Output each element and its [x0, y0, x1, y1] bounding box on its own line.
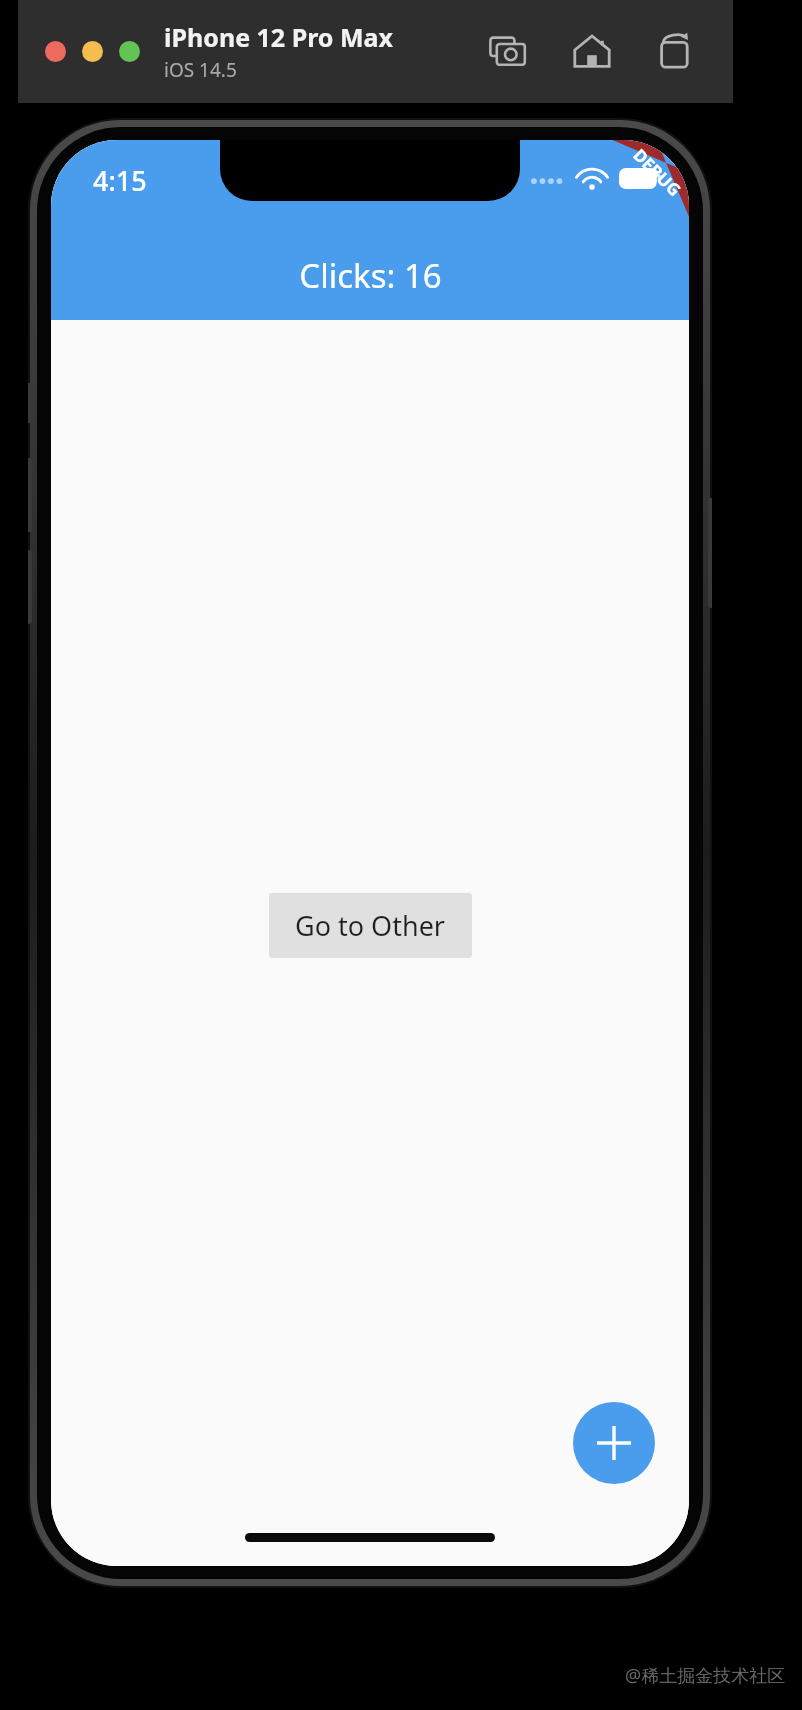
- button[interactable]: Rotate: [649, 25, 703, 79]
- staticText: Go to Other: [295, 907, 446, 944]
- button[interactable]: Home: [565, 25, 619, 79]
- staticText: DEBUG: [628, 143, 686, 201]
- staticText: iOS 14.5: [164, 57, 237, 83]
- button[interactable]: Add: [573, 1402, 655, 1484]
- button[interactable]: Go to Other: [269, 893, 472, 958]
- staticText: 4:15: [93, 162, 147, 199]
- staticText: iPhone 12 Pro Max: [164, 20, 393, 54]
- staticText: Clicks: 16: [299, 253, 442, 298]
- staticText: @稀土掘金技术社区: [625, 1663, 786, 1688]
- button[interactable]: Screenshot: [481, 25, 535, 79]
